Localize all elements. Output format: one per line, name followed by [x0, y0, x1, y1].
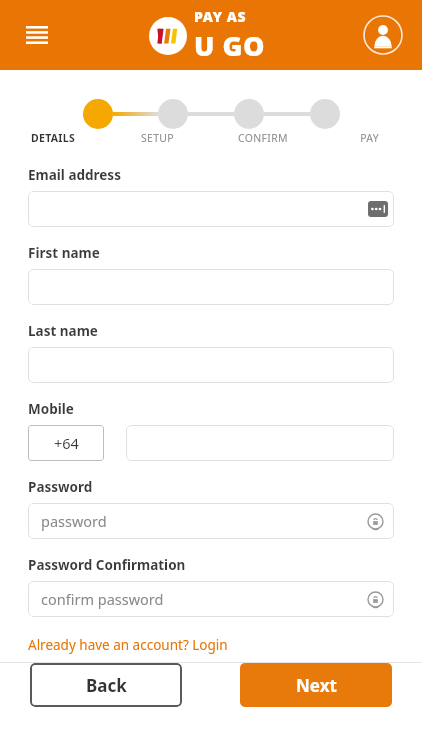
- staticText: First name: [28, 244, 100, 262]
- staticText: SETUP: [141, 131, 174, 145]
- staticText: Password: [28, 478, 93, 496]
- button[interactable]: Already have an account? Login: [28, 636, 228, 654]
- button[interactable]: Menu: [14, 12, 60, 58]
- staticText: Next: [296, 674, 337, 697]
- staticText: confirm password: [41, 589, 164, 609]
- button[interactable]: +64: [28, 425, 104, 461]
- button[interactable]: [28, 191, 394, 227]
- button[interactable]: password: [28, 503, 394, 539]
- button[interactable]: Account: [362, 14, 404, 56]
- staticText: PAY: [360, 131, 379, 145]
- staticText: Mobile: [28, 400, 74, 418]
- staticText: Already have an account? Login: [28, 636, 228, 654]
- button[interactable]: [28, 347, 394, 383]
- staticText: Back: [86, 674, 127, 697]
- button[interactable]: [28, 269, 394, 305]
- staticText: password: [41, 511, 107, 531]
- staticText: Last name: [28, 322, 98, 340]
- staticText: Password Confirmation: [28, 556, 186, 574]
- staticText: PAY AS: [194, 7, 247, 26]
- button[interactable]: Back: [30, 663, 182, 707]
- button[interactable]: Next: [240, 663, 392, 707]
- staticText: U GO: [194, 27, 265, 64]
- staticText: CONFIRM: [238, 131, 288, 145]
- staticText: Email address: [28, 166, 121, 184]
- button[interactable]: [126, 425, 394, 461]
- button[interactable]: confirm password: [28, 581, 394, 617]
- staticText: +64: [54, 433, 79, 453]
- staticText: DETAILS: [31, 131, 75, 145]
